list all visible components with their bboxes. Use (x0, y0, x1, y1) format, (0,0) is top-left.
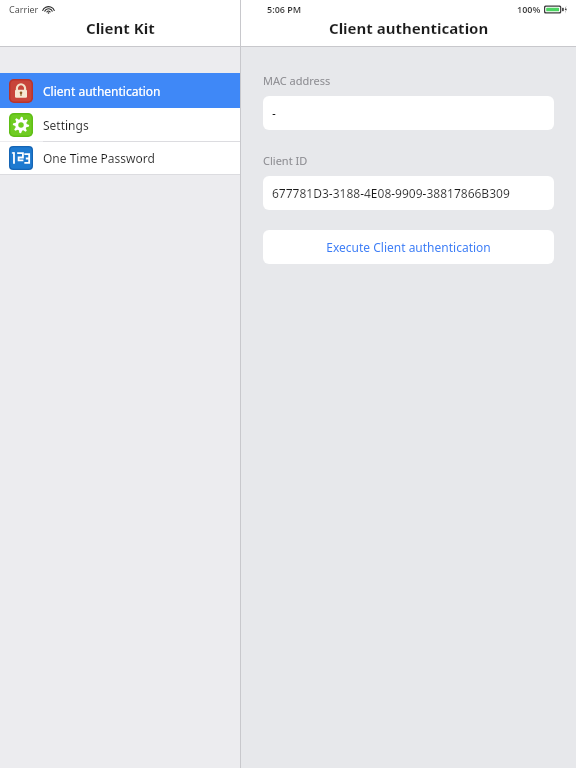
staticText: Client authentication (329, 18, 489, 38)
other: Wi-Fi (43, 4, 54, 15)
staticText: Client ID (263, 153, 308, 168)
button[interactable]: Client authentication (0, 73, 240, 108)
staticText: 5:06 PM (267, 3, 302, 15)
staticText: Carrier (9, 3, 39, 15)
staticText: Settings (43, 117, 89, 133)
staticText: One Time Password (43, 150, 155, 166)
staticText: - (272, 105, 276, 121)
button[interactable]: Settings (0, 108, 240, 141)
button[interactable]: One Time Password (0, 142, 240, 174)
staticText: 677781D3-3188-4E08-9909-38817866B309 (272, 185, 510, 201)
staticText: Client authentication (43, 83, 161, 99)
staticText: 100% (517, 3, 541, 15)
staticText: Execute Client authentication (326, 239, 491, 255)
other: Battery full, charging (544, 4, 568, 15)
other: Settings (9, 113, 33, 137)
button[interactable]: Execute Client authentication (263, 230, 554, 264)
staticText: Client Kit (86, 18, 155, 38)
button[interactable]: - (263, 96, 554, 130)
button[interactable]: 677781D3-3188-4E08-9909-38817866B309 (263, 176, 554, 210)
other: Client authentication (9, 79, 33, 103)
staticText: MAC address (263, 73, 331, 88)
other: One Time Password (9, 146, 33, 170)
